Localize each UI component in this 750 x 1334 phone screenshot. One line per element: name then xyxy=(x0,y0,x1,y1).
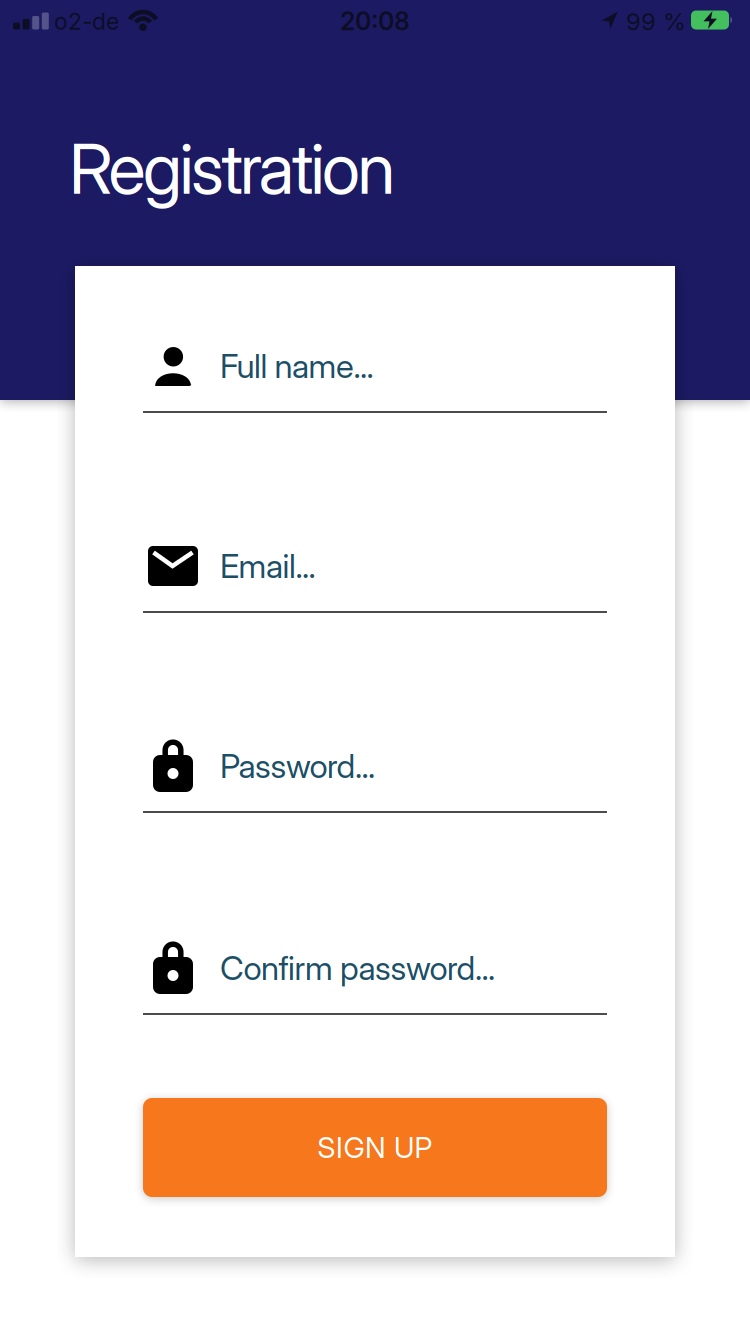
staticText: 20:08 xyxy=(340,6,410,36)
button[interactable]: Email... xyxy=(143,536,607,616)
staticText: SIGN UP xyxy=(317,1130,432,1165)
button[interactable]: SIGN UP xyxy=(143,1098,607,1197)
staticText: o2-de xyxy=(54,7,119,35)
staticText: Email... xyxy=(220,546,315,586)
button[interactable]: Confirm password... xyxy=(143,938,607,1018)
button[interactable]: Full name... xyxy=(143,336,607,416)
staticText: Registration xyxy=(69,127,395,210)
button[interactable]: Password... xyxy=(143,736,607,816)
staticText: Full name... xyxy=(220,346,373,386)
staticText: 99 % xyxy=(626,7,686,36)
staticText: Confirm password... xyxy=(220,948,495,988)
staticText: Password... xyxy=(220,746,375,786)
